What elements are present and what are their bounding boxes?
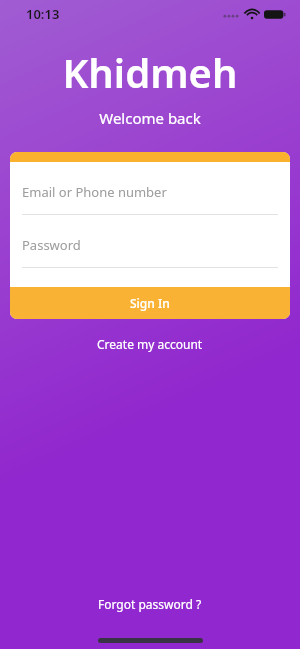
staticText: 10:13 bbox=[26, 5, 60, 23]
staticText: Password bbox=[22, 236, 81, 254]
staticText: Welcome back bbox=[0, 108, 300, 128]
button[interactable]: Email or Phone number bbox=[22, 182, 278, 215]
staticText: Khidmeh bbox=[0, 45, 300, 99]
button[interactable]: Password bbox=[22, 235, 278, 268]
button[interactable]: Sign In bbox=[10, 287, 290, 319]
staticText: Email or Phone number bbox=[22, 183, 167, 201]
staticText: Forgot password ? bbox=[98, 596, 202, 612]
staticText: Create my account bbox=[97, 336, 203, 352]
button[interactable]: Forgot password ? bbox=[88, 593, 212, 615]
button[interactable]: Create my account bbox=[87, 333, 213, 355]
staticText: Sign In bbox=[130, 295, 170, 311]
